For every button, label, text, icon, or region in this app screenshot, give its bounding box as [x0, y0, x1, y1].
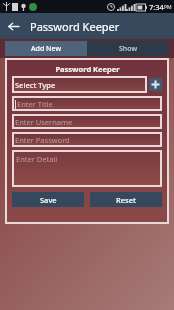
button[interactable]: Add New — [5, 41, 87, 56]
button[interactable]: Enter Detail — [12, 150, 162, 187]
staticText: Password Keeper — [30, 19, 120, 34]
button[interactable]: Select Type — [12, 76, 147, 93]
staticText: Enter Username — [15, 117, 73, 127]
staticText: Enter Detail — [16, 154, 58, 164]
button[interactable]: Enter Password — [12, 132, 162, 147]
button[interactable]: Enter Title — [12, 96, 162, 111]
button[interactable]: Enter Username — [12, 114, 162, 129]
staticText: PM — [164, 4, 172, 11]
staticText: Password Keeper — [55, 64, 120, 74]
button[interactable]: Reset — [90, 192, 162, 207]
staticText: Select Type — [15, 80, 56, 90]
staticText: Enter Password — [15, 135, 70, 145]
staticText: Add New — [31, 44, 62, 54]
staticText: Show — [119, 44, 138, 54]
staticText: Save — [40, 195, 57, 205]
button[interactable]: Add type — [149, 78, 162, 91]
staticText: Enter Title — [17, 99, 53, 109]
staticText: Reset — [116, 195, 136, 205]
button[interactable]: Save — [12, 192, 84, 207]
button[interactable]: Show — [87, 41, 169, 56]
button[interactable]: Back — [0, 13, 26, 39]
staticText: 7:34 — [149, 2, 164, 12]
